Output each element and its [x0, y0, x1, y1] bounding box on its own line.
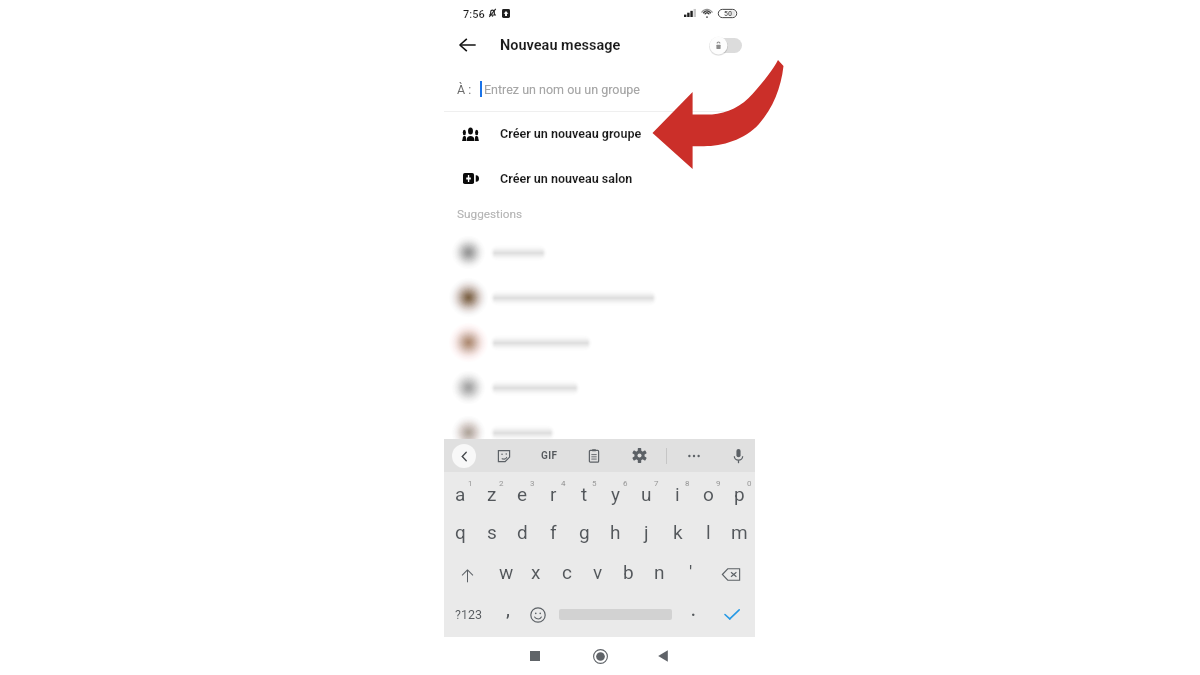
button[interactable]: i — [662, 472, 693, 512]
button[interactable]: Créer un nouveau groupe — [444, 111, 755, 156]
staticText: l — [706, 521, 711, 543]
staticText: b — [623, 561, 634, 583]
button[interactable]: x — [521, 551, 551, 592]
button[interactable]: Supprimer — [706, 551, 755, 592]
staticText: . — [691, 601, 696, 620]
button[interactable]: Maj — [444, 551, 491, 592]
button[interactable]: f — [538, 512, 569, 551]
button[interactable] — [444, 275, 755, 320]
staticText: q — [455, 521, 466, 543]
button[interactable]: o — [693, 472, 724, 512]
button[interactable]: l — [693, 512, 724, 551]
button[interactable]: e — [507, 472, 538, 512]
button[interactable] — [444, 365, 755, 410]
button[interactable]: m — [724, 512, 755, 551]
button[interactable]: Autocollants — [497, 449, 511, 463]
button[interactable]: v — [582, 551, 613, 592]
button[interactable]: Espace — [553, 592, 678, 637]
staticText: a — [455, 483, 466, 505]
button[interactable]: À : — [444, 68, 755, 110]
button[interactable]: w — [491, 551, 521, 592]
staticText: z — [487, 483, 497, 505]
button[interactable]: j — [631, 512, 662, 551]
button[interactable]: Paramètres — [632, 448, 647, 463]
staticText: Créer un nouveau salon — [500, 171, 633, 186]
staticText: x — [531, 561, 541, 583]
staticText: u — [641, 483, 652, 505]
staticText: Suggestions — [457, 207, 523, 221]
button[interactable] — [444, 320, 755, 365]
staticText: Entrez un nom ou un groupe — [484, 82, 640, 97]
button[interactable] — [444, 230, 755, 275]
staticText: À : — [457, 82, 472, 97]
button[interactable]: ?123 — [444, 592, 492, 637]
button[interactable]: n — [644, 551, 675, 592]
button[interactable]: Micro — [732, 448, 745, 464]
button[interactable]: GIF — [540, 448, 558, 464]
staticText: ?123 — [455, 607, 482, 622]
button[interactable]: . — [678, 592, 708, 637]
button[interactable]: Retour — [650, 643, 676, 669]
button[interactable]: b — [613, 551, 644, 592]
staticText: t — [581, 483, 588, 505]
staticText: v — [593, 561, 603, 583]
button[interactable]: k — [662, 512, 693, 551]
staticText: 50 — [724, 10, 732, 18]
staticText: 8 — [685, 479, 690, 488]
staticText: c — [562, 561, 572, 583]
button[interactable]: Chiffrement — [709, 36, 742, 55]
button[interactable]: Valider — [708, 592, 755, 637]
staticText: 6 — [623, 479, 628, 488]
button[interactable]: ' — [675, 551, 706, 592]
staticText: 4 — [561, 479, 566, 488]
button[interactable]: u — [631, 472, 662, 512]
staticText: n — [654, 561, 665, 583]
button[interactable]: Presse-papiers — [587, 449, 601, 463]
button[interactable]: t — [569, 472, 600, 512]
staticText: y — [611, 483, 620, 505]
staticText: k — [673, 521, 683, 543]
staticText: d — [517, 521, 528, 543]
staticText: o — [703, 483, 714, 505]
button[interactable]: q — [444, 512, 476, 551]
staticText: 3 — [530, 479, 535, 488]
button[interactable]: Créer un nouveau salon — [444, 156, 755, 201]
staticText: g — [579, 521, 590, 543]
button[interactable]: y — [600, 472, 631, 512]
button[interactable]: r — [538, 472, 569, 512]
staticText: Nouveau message — [500, 37, 621, 54]
staticText: 7:56 — [463, 8, 485, 21]
button[interactable]: , — [492, 592, 523, 637]
button[interactable]: z — [476, 472, 507, 512]
button[interactable]: Accueil — [587, 643, 613, 669]
staticText: j — [644, 521, 649, 543]
button[interactable]: a — [444, 472, 476, 512]
staticText: e — [517, 483, 528, 505]
staticText: i — [675, 483, 680, 505]
button[interactable]: c — [551, 551, 582, 592]
staticText: 9 — [716, 479, 721, 488]
staticText: 7 — [654, 479, 659, 488]
button[interactable]: g — [569, 512, 600, 551]
staticText: ' — [689, 561, 693, 583]
button[interactable]: p — [724, 472, 755, 512]
staticText: w — [499, 561, 514, 583]
staticText: f — [550, 521, 557, 543]
button[interactable]: Récents — [522, 643, 548, 669]
staticText: m — [731, 521, 748, 543]
staticText: 0 — [747, 479, 752, 488]
button[interactable]: d — [507, 512, 538, 551]
button[interactable]: Retour — [453, 31, 481, 59]
staticText: , — [506, 601, 510, 620]
staticText: p — [734, 483, 745, 505]
staticText: GIF — [541, 450, 558, 462]
button[interactable] — [444, 410, 755, 455]
button[interactable]: h — [600, 512, 631, 551]
button[interactable]: s — [476, 512, 507, 551]
staticText: h — [610, 521, 621, 543]
button[interactable]: Plus — [687, 449, 701, 463]
staticText: s — [487, 521, 497, 543]
staticText: 1 — [468, 479, 473, 488]
button[interactable]: Emoji — [523, 592, 553, 637]
button[interactable]: Fermer — [452, 444, 476, 468]
